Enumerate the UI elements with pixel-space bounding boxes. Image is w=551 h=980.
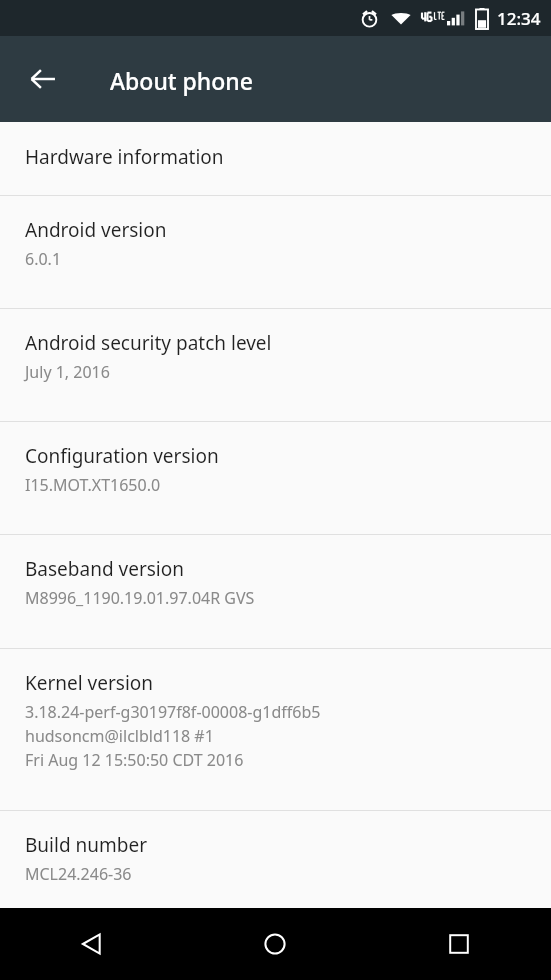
- button[interactable]: Home: [183, 908, 367, 980]
- staticText: I15.MOT.XT1650.0: [25, 474, 161, 496]
- staticText: Hardware information: [25, 144, 224, 170]
- staticText: M8996_1190.19.01.97.04R GVS: [25, 587, 255, 609]
- staticText: Android security patch level: [25, 330, 272, 356]
- staticText: Fri Aug 12 15:50:50 CDT 2016: [25, 749, 244, 771]
- staticText: Kernel version: [25, 670, 154, 696]
- staticText: hudsoncm@ilclbld118 #1: [25, 725, 214, 747]
- button[interactable]: Recent apps: [367, 908, 551, 980]
- button[interactable]: Kernel version: [0, 649, 551, 810]
- staticText: MCL24.246-36: [25, 863, 132, 885]
- staticText: 6.0.1: [25, 248, 62, 270]
- button[interactable]: Back: [15, 51, 71, 107]
- button[interactable]: Android version: [0, 196, 551, 308]
- button[interactable]: Build number: [0, 811, 551, 908]
- button[interactable]: Configuration version: [0, 422, 551, 534]
- button[interactable]: Back: [0, 908, 183, 980]
- staticText: Android version: [25, 217, 167, 243]
- staticText: Baseband version: [25, 556, 184, 582]
- button[interactable]: Hardware information: [0, 122, 551, 195]
- button[interactable]: Android security patch level: [0, 309, 551, 421]
- staticText: Configuration version: [25, 443, 219, 469]
- staticText: 12:34: [497, 7, 541, 30]
- button[interactable]: Baseband version: [0, 535, 551, 648]
- staticText: 3.18.24-perf-g30197f8f-00008-g1dff6b5: [25, 701, 321, 723]
- staticText: Build number: [25, 832, 148, 858]
- staticText: July 1, 2016: [25, 361, 110, 383]
- staticText: About phone: [110, 65, 253, 96]
